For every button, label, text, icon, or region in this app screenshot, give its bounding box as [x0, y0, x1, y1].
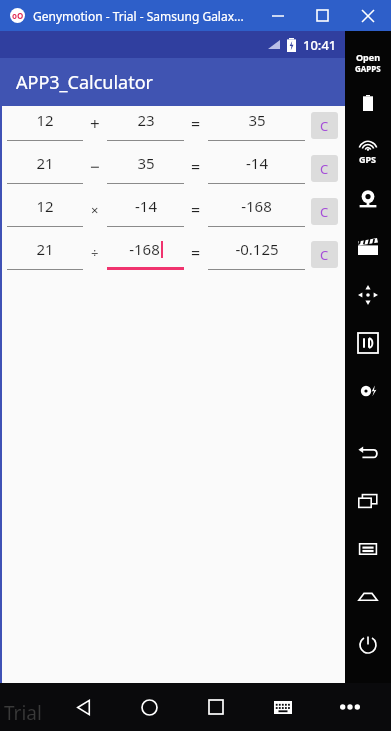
button[interactable]: Close	[345, 0, 391, 31]
button[interactable]: Disk IO	[345, 367, 391, 415]
button[interactable]: Open GAPPS	[345, 45, 391, 79]
staticText: 21	[36, 239, 54, 259]
staticText: GAPPS	[355, 63, 381, 74]
staticText: -14	[246, 153, 268, 173]
button[interactable]: C	[311, 241, 338, 268]
button[interactable]: 21	[7, 235, 83, 278]
button[interactable]: More options	[316, 683, 383, 731]
staticText: 21	[36, 153, 54, 173]
button[interactable]: Menu	[345, 525, 391, 573]
button[interactable]: Minimize	[255, 0, 300, 31]
staticText: Trial	[4, 700, 42, 726]
staticText: -14	[135, 196, 157, 216]
staticText: -168	[241, 196, 272, 216]
staticText: ×	[91, 201, 99, 219]
button[interactable]: Power	[345, 621, 391, 669]
button[interactable]: Recents	[182, 683, 249, 731]
button[interactable]: -168	[208, 192, 305, 235]
staticText: =	[191, 113, 201, 135]
staticText: -168	[129, 239, 160, 259]
button[interactable]: C	[311, 112, 338, 139]
button[interactable]: Home	[116, 683, 182, 731]
staticText: -0.125	[235, 239, 279, 259]
staticText: APP3_Calculator	[16, 70, 154, 95]
staticText: GPS	[359, 153, 377, 165]
button[interactable]: Maximize	[300, 0, 345, 31]
staticText: =	[191, 199, 201, 221]
staticText: oO	[12, 10, 24, 21]
button[interactable]: -0.125	[208, 235, 305, 278]
staticText: Genymotion - Trial - Samsung Galax...	[33, 8, 244, 24]
button[interactable]: D-pad	[345, 271, 391, 319]
button[interactable]: Identifiers	[345, 319, 391, 367]
button[interactable]: 35	[107, 149, 184, 192]
staticText: 12	[36, 110, 54, 130]
button[interactable]: -14	[107, 192, 184, 235]
staticText: C	[320, 117, 329, 135]
button[interactable]: Battery	[345, 79, 391, 127]
button[interactable]: Back	[345, 429, 391, 477]
staticText: +	[90, 112, 100, 135]
staticText: ÷	[91, 244, 99, 262]
button[interactable]: Home	[345, 573, 391, 621]
staticText: C	[320, 160, 329, 178]
button[interactable]: 12	[7, 106, 83, 149]
staticText: 23	[137, 110, 155, 130]
staticText: −	[90, 155, 100, 178]
staticText: =	[191, 156, 201, 178]
button[interactable]: 21	[7, 149, 83, 192]
button[interactable]: Recents	[345, 477, 391, 525]
staticText: C	[320, 203, 329, 221]
button[interactable]: C	[311, 155, 338, 182]
staticText: 10:41	[303, 36, 337, 54]
button[interactable]: Record video	[345, 223, 391, 271]
staticText: 35	[248, 110, 266, 130]
staticText: =	[191, 242, 201, 264]
button[interactable]: -168	[107, 235, 184, 278]
button[interactable]: -14	[208, 149, 305, 192]
button[interactable]: 12	[7, 192, 83, 235]
button[interactable]: 23	[107, 106, 184, 149]
button[interactable]: GPS	[345, 127, 391, 175]
staticText: C	[320, 246, 329, 264]
staticText: 35	[137, 153, 155, 173]
button[interactable]: Keyboard	[249, 683, 316, 731]
button[interactable]: 35	[208, 106, 305, 149]
button[interactable]: Camera	[345, 175, 391, 223]
button[interactable]: Back	[50, 683, 116, 731]
staticText: 12	[36, 196, 54, 216]
staticText: Open	[356, 51, 381, 63]
button[interactable]: C	[311, 198, 338, 225]
